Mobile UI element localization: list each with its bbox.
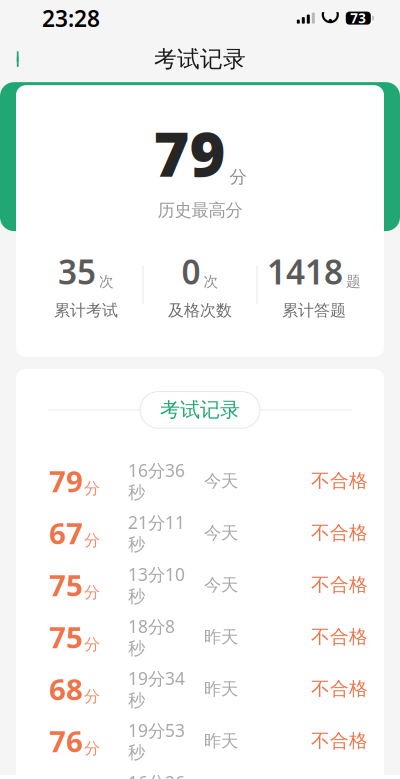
staticText: 昨天 <box>204 730 238 751</box>
staticText: 昨天 <box>204 626 238 647</box>
staticText: 13分10秒 <box>128 563 185 607</box>
staticText: 考试记录 <box>160 398 240 422</box>
staticText: 今天 <box>204 574 238 595</box>
staticText: 16分36秒 <box>128 459 185 503</box>
staticText: 今天 <box>204 522 238 543</box>
staticText: 分 <box>84 635 100 654</box>
staticText: 23:28 <box>42 3 100 33</box>
staticText: 不合格 <box>311 573 368 596</box>
staticText: 75 <box>49 565 83 604</box>
staticText: 35 <box>58 249 96 294</box>
staticText: 0 <box>181 249 200 294</box>
staticText: 76 <box>49 721 83 760</box>
staticText: 分 <box>84 583 100 602</box>
button[interactable]: 75 <box>16 767 384 779</box>
staticText: 79 <box>49 461 83 500</box>
staticText: 18分8秒 <box>128 615 175 659</box>
button[interactable]: 76 <box>16 715 384 767</box>
staticText: 次 <box>99 273 114 291</box>
staticText: 分 <box>84 687 100 706</box>
staticText: 分 <box>84 739 100 758</box>
button[interactable]: 68 <box>16 663 384 715</box>
staticText: 考试记录 <box>154 45 246 73</box>
button[interactable]: 返回 <box>0 40 40 78</box>
staticText: 今天 <box>204 470 238 491</box>
staticText: 分 <box>229 166 246 188</box>
staticText: 及格次数 <box>168 301 232 320</box>
button[interactable]: 79 <box>16 455 384 507</box>
staticText: 历史最高分 <box>157 200 242 221</box>
staticText: 题 <box>346 273 361 291</box>
staticText: 不合格 <box>311 469 368 492</box>
staticText: 79 <box>153 112 225 193</box>
staticText: 分 <box>84 531 100 550</box>
staticText: 68 <box>49 669 83 708</box>
staticText: 21分11秒 <box>128 511 185 555</box>
staticText: 1418 <box>267 249 343 294</box>
staticText: 次 <box>203 273 218 291</box>
staticText: 19分53秒 <box>128 719 185 763</box>
staticText: 73 <box>350 9 366 27</box>
staticText: 不合格 <box>311 729 368 752</box>
staticText: 分 <box>84 479 100 498</box>
staticText: 昨天 <box>204 678 238 699</box>
staticText: 16分26秒 <box>128 771 185 779</box>
staticText: 67 <box>49 513 83 552</box>
staticText: 累计考试 <box>54 301 118 320</box>
staticText: 不合格 <box>311 677 368 700</box>
button[interactable]: 75 <box>16 611 384 663</box>
staticText: 累计答题 <box>282 301 346 320</box>
staticText: 不合格 <box>311 521 368 544</box>
staticText: 不合格 <box>311 625 368 648</box>
staticText: 75 <box>49 617 83 656</box>
button[interactable]: 67 <box>16 507 384 559</box>
button[interactable]: 75 <box>16 559 384 611</box>
staticText: 19分34秒 <box>128 667 185 711</box>
